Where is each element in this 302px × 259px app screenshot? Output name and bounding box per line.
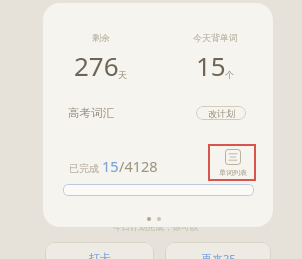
staticText: 天: [118, 69, 127, 80]
staticText: 个: [225, 69, 234, 80]
staticText: /4128: [119, 156, 158, 176]
button[interactable]: 打卡: [45, 242, 154, 259]
staticText: 再来25: [201, 251, 236, 259]
staticText: 改计划: [208, 108, 235, 119]
staticText: 今日计划完成，你可以: [113, 222, 198, 233]
staticText: 已完成: [69, 162, 99, 175]
button[interactable]: 单词列表: [210, 149, 256, 177]
staticText: 单词列表: [219, 168, 247, 177]
staticText: 剩余: [92, 32, 110, 43]
staticText: 276: [74, 48, 119, 83]
button[interactable]: 改计划: [196, 106, 246, 120]
staticText: 15: [196, 48, 226, 83]
staticText: 15: [102, 156, 119, 176]
staticText: 打卡: [89, 251, 111, 259]
staticText: 高考词汇: [68, 106, 114, 120]
button[interactable]: 再来25: [165, 242, 271, 259]
staticText: 今天背单词: [193, 32, 238, 43]
